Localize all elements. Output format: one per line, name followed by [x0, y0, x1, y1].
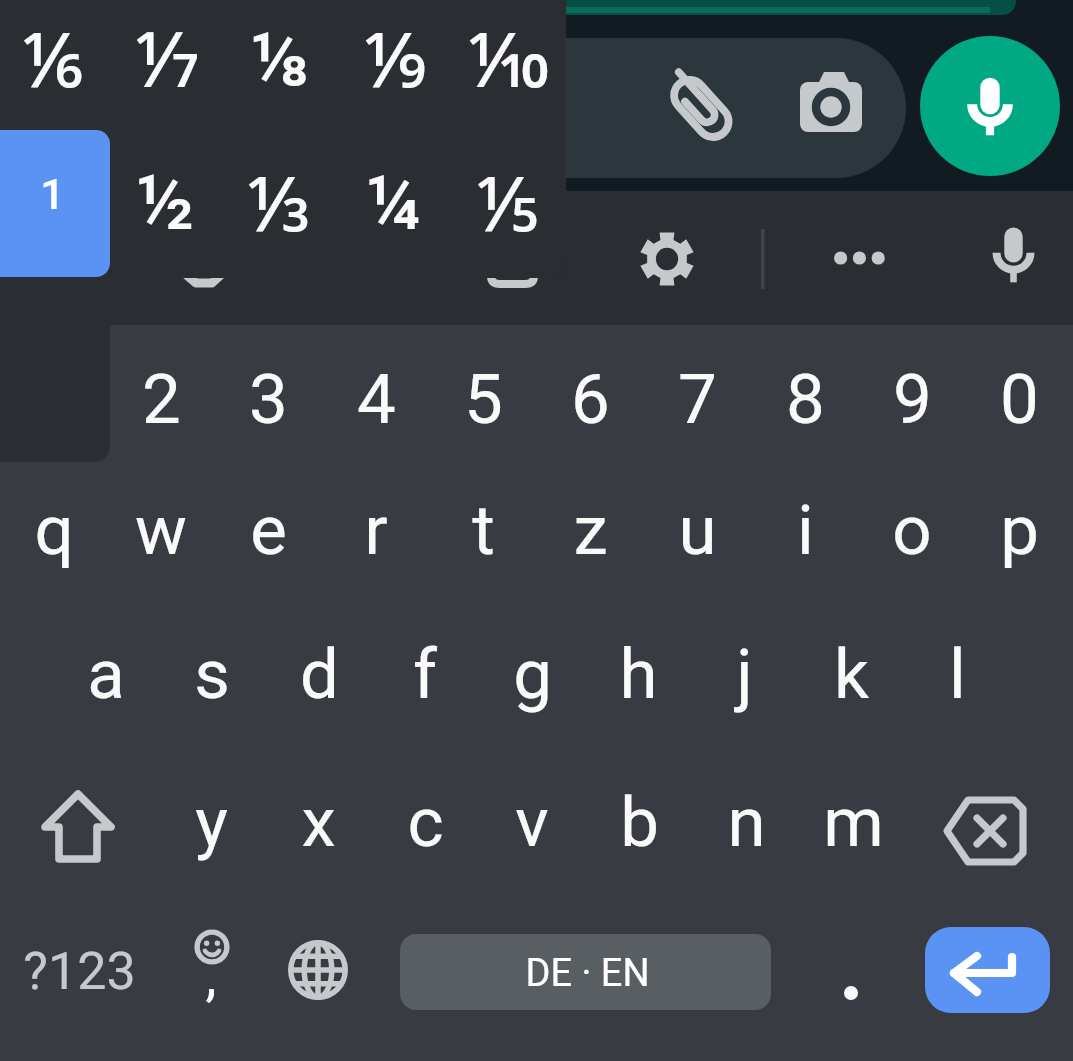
staticText: x: [301, 782, 336, 863]
staticText: ,: [205, 943, 217, 1009]
staticText: 7: [678, 359, 717, 440]
staticText: 5: [464, 359, 503, 440]
button[interactable]: Keyboard settings: [616, 209, 716, 309]
button[interactable]: Voice message: [920, 36, 1060, 176]
staticText: e: [250, 490, 287, 571]
staticText: b: [620, 782, 659, 863]
button[interactable]: Language: [268, 920, 368, 1020]
staticText: ⅐: [134, 6, 199, 110]
staticText: h: [619, 634, 658, 715]
staticText: 6: [571, 359, 610, 440]
staticText: ¼: [366, 158, 421, 247]
staticText: s: [194, 634, 230, 715]
staticText: 8: [786, 359, 825, 440]
staticText: ½: [136, 158, 195, 247]
staticText: d: [300, 634, 339, 715]
staticText: y: [195, 782, 228, 863]
button[interactable]: Camera: [782, 50, 882, 162]
button[interactable]: More options: [808, 209, 908, 309]
staticText: 2: [142, 359, 181, 440]
button[interactable]: Voice input: [963, 209, 1063, 309]
button[interactable]: Attach: [650, 50, 750, 162]
staticText: q: [34, 490, 74, 571]
staticText: ⅙: [21, 6, 83, 110]
staticText: ⅓: [247, 150, 312, 254]
staticText: g: [513, 634, 552, 715]
staticText: 4: [357, 359, 396, 440]
button[interactable]: Shift: [28, 780, 128, 876]
staticText: w: [135, 490, 187, 571]
staticText: m: [823, 782, 884, 863]
staticText: j: [736, 634, 753, 715]
staticText: k: [834, 634, 869, 715]
staticText: l: [949, 634, 966, 715]
staticText: i: [797, 490, 814, 571]
button[interactable]: Enter: [925, 927, 1049, 1014]
staticText: 0: [1000, 359, 1039, 440]
staticText: 9: [893, 359, 932, 440]
staticText: ⅒: [467, 6, 549, 110]
staticText: z: [573, 490, 608, 571]
staticText: p: [1000, 490, 1039, 571]
staticText: DE · EN: [525, 951, 650, 996]
staticText: f: [413, 634, 437, 715]
staticText: 3: [249, 359, 288, 440]
button[interactable]: Backspace: [935, 780, 1035, 876]
staticText: t: [472, 490, 495, 571]
staticText: ⅑: [363, 6, 426, 110]
staticText: 1: [40, 169, 65, 219]
staticText: u: [678, 490, 717, 571]
staticText: r: [364, 490, 388, 571]
staticText: ⅕: [475, 150, 539, 254]
staticText: ?123: [23, 941, 136, 1002]
staticText: a: [87, 634, 125, 715]
staticText: n: [727, 782, 766, 863]
staticText: v: [515, 782, 549, 863]
staticText: c: [407, 782, 444, 863]
button[interactable]: Emoji: [161, 920, 261, 1020]
staticText: ⅛: [250, 14, 310, 103]
button[interactable]: Space: [400, 934, 771, 1010]
staticText: o: [892, 490, 932, 571]
